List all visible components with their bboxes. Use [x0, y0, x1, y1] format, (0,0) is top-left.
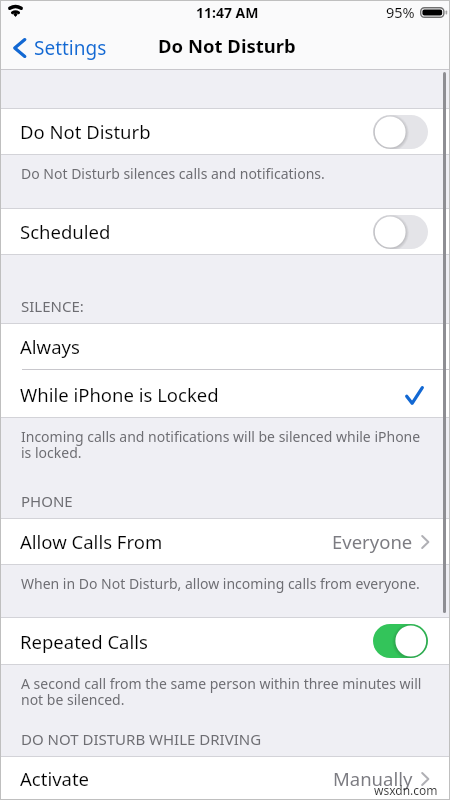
staticText: Allow Calls From	[20, 529, 163, 554]
staticText: Do Not Disturb	[158, 33, 296, 58]
other: Off	[373, 115, 428, 149]
staticText: DO NOT DISTURB WHILE DRIVING	[21, 729, 262, 749]
staticText: Repeated Calls	[20, 629, 148, 654]
staticText: Manually	[333, 766, 413, 791]
button[interactable]: Always	[0, 323, 450, 370]
button[interactable]: Allow Calls From	[0, 518, 450, 565]
button[interactable]: Scheduled	[0, 208, 450, 255]
staticText: A second call from the same person withi…	[21, 674, 422, 709]
staticText: When in Do Not Disturb, allow incoming c…	[21, 574, 420, 593]
staticText: 95%	[386, 2, 415, 22]
staticText: Settings	[34, 35, 107, 61]
button[interactable]: Settings	[0, 32, 117, 66]
staticText: Scheduled	[20, 219, 111, 244]
staticText: Everyone	[332, 529, 413, 554]
staticText: Activate	[20, 766, 90, 791]
staticText: Do Not Disturb	[20, 119, 151, 144]
other: Off	[373, 215, 428, 249]
other: On	[373, 624, 428, 658]
staticText: PHONE	[21, 491, 73, 511]
staticText: SILENCE:	[21, 296, 84, 316]
staticText: While iPhone is Locked	[20, 382, 219, 407]
button[interactable]: Activate	[0, 756, 450, 800]
staticText: Incoming calls and notifications will be…	[21, 427, 421, 462]
staticText: Always	[20, 334, 80, 359]
button[interactable]: Do Not Disturb	[0, 108, 450, 155]
staticText: wsxdn.com	[374, 782, 438, 798]
other: Wi-Fi	[7, 4, 24, 17]
staticText: 11:47 AM	[196, 3, 259, 22]
staticText: Do Not Disturb silences calls and notifi…	[21, 164, 325, 183]
button[interactable]: Repeated Calls	[0, 617, 450, 665]
button[interactable]: While iPhone is Locked	[0, 370, 450, 418]
